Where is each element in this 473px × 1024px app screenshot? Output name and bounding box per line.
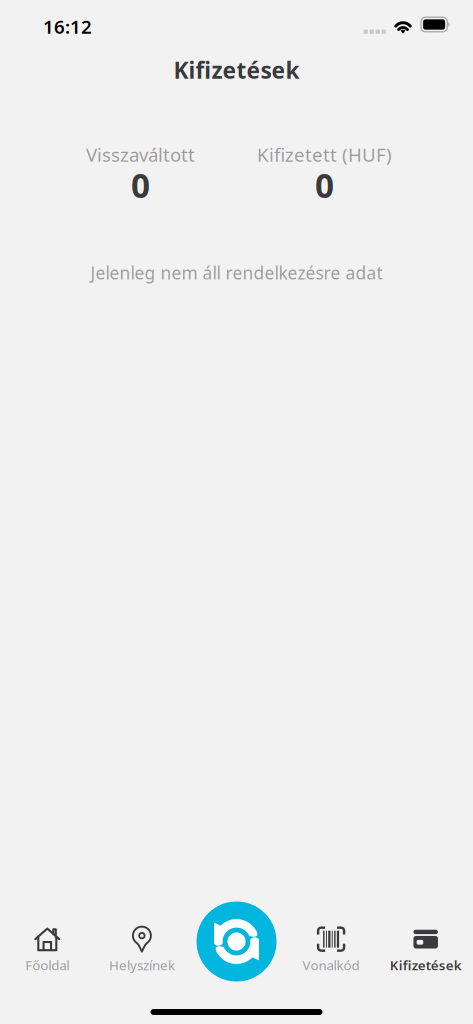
staticText: 0 xyxy=(131,163,150,207)
staticText: Kifizetések xyxy=(390,956,462,974)
staticText: Főoldal xyxy=(25,956,69,974)
staticText: Jelenleg nem áll rendelkezésre adat xyxy=(90,261,382,284)
button[interactable]: Vonalkód xyxy=(284,922,378,978)
staticText: 0 xyxy=(315,163,334,207)
staticText: Kifizetések xyxy=(173,55,299,85)
button[interactable]: Visszaváltás xyxy=(196,901,276,981)
staticText: Helyszínek xyxy=(109,956,175,974)
button[interactable]: Helyszínek xyxy=(95,922,189,978)
staticText: Visszaváltott xyxy=(86,142,195,167)
staticText: Vonalkód xyxy=(303,956,360,974)
staticText: 16:12 xyxy=(43,14,92,39)
button[interactable]: Főoldal xyxy=(0,922,95,978)
staticText: Kifizetett (HUF) xyxy=(257,142,392,167)
button[interactable]: Kifizetések xyxy=(378,922,473,978)
